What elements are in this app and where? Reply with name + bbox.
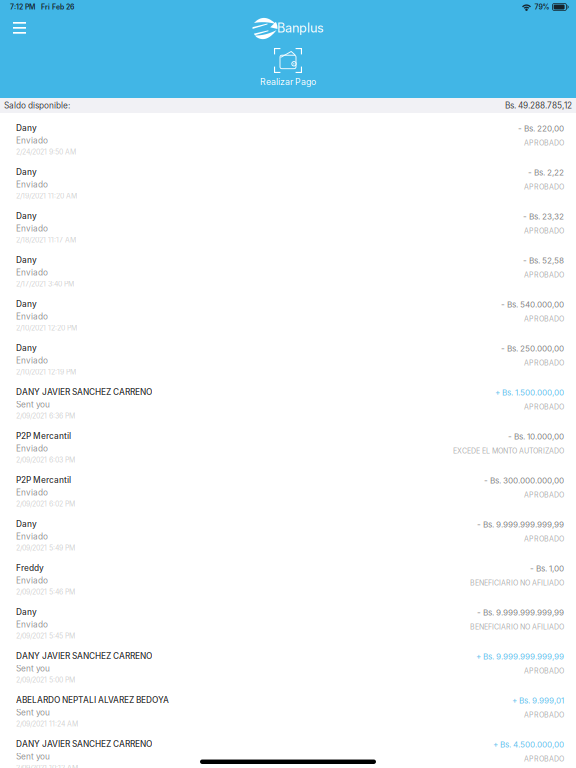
staticText: Dany (16, 343, 37, 353)
staticText: Banplus (277, 20, 324, 36)
staticText: 79% (534, 3, 549, 11)
staticText: APROBADO (524, 491, 564, 499)
staticText: Enviado (16, 487, 48, 497)
staticText: APROBADO (524, 755, 564, 763)
staticText: 2/10/2021 12:19 PM (16, 368, 76, 376)
staticText: - Bs. 2,22 (528, 168, 564, 177)
button[interactable]: ABELARDO NEPTALI ALVAREZ BEDOYA (0, 685, 576, 729)
staticText: - Bs. 540.000,00 (501, 300, 564, 309)
staticText: 2/09/2021 5:00 PM (16, 676, 75, 684)
staticText: Dany (16, 211, 37, 221)
staticText: + Bs. 4.500.000,00 (493, 740, 564, 749)
staticText: 2/17/2021 3:40 PM (16, 280, 74, 288)
button[interactable]: Dany (0, 157, 576, 201)
staticText: BENEFICIARIO NO AFILIADO (470, 579, 564, 587)
staticText: 2/18/2021 11:17 AM (16, 236, 76, 244)
button[interactable]: Dany (0, 333, 576, 377)
staticText: Sent you (16, 707, 50, 717)
staticText: - Bs. 220,00 (518, 124, 564, 133)
staticText: - Bs. 52,58 (523, 256, 564, 265)
staticText: - Bs. 300.000.000,00 (484, 476, 564, 485)
button[interactable]: Freddy (0, 553, 576, 597)
staticText: APROBADO (524, 403, 564, 411)
staticText: 2/09/2021 10:12 AM (16, 764, 78, 768)
staticText: Dany (16, 519, 37, 529)
staticText: Saldo disponible: (4, 100, 70, 110)
staticText: - Bs. 250.000,00 (501, 344, 564, 353)
button[interactable]: Dany (0, 113, 576, 157)
button[interactable]: Dany (0, 201, 576, 245)
staticText: Enviado (16, 179, 48, 189)
staticText: DANY JAVIER SANCHEZ CARREÑO (16, 651, 152, 661)
staticText: Dany (16, 255, 37, 265)
staticText: Enviado (16, 135, 48, 145)
staticText: APROBADO (524, 139, 564, 147)
staticText: + Bs. 9.999,01 (512, 696, 564, 705)
staticText: Enviado (16, 355, 48, 365)
staticText: 2/10/2021 12:20 PM (16, 324, 77, 332)
button[interactable]: Dany (0, 289, 576, 333)
button[interactable]: Realizar Pago (260, 48, 316, 87)
staticText: P2P Mercantil (16, 431, 71, 441)
staticText: APROBADO (524, 667, 564, 675)
staticText: Fri Feb 26 (41, 3, 74, 11)
staticText: 2/09/2021 5:49 PM (16, 544, 75, 552)
staticText: APROBADO (524, 271, 564, 279)
staticText: Bs. 49.288.785,12 (505, 100, 572, 110)
staticText: APROBADO (524, 535, 564, 543)
staticText: - Bs. 9.999.999.999,99 (477, 520, 564, 529)
staticText: P2P Mercantil (16, 475, 71, 485)
button[interactable]: DANY JAVIER SANCHEZ CARREÑO (0, 377, 576, 421)
staticText: Dany (16, 123, 37, 133)
button[interactable]: Dany (0, 597, 576, 641)
staticText: Sent you (16, 399, 50, 409)
staticText: 2/09/2021 5:45 PM (16, 632, 75, 640)
staticText: APROBADO (524, 359, 564, 367)
staticText: Enviado (16, 267, 48, 277)
staticText: Realizar Pago (260, 76, 316, 87)
staticText: ABELARDO NEPTALI ALVAREZ BEDOYA (16, 695, 169, 705)
staticText: Enviado (16, 311, 48, 321)
button[interactable]: P2P Mercantil (0, 465, 576, 509)
staticText: Dany (16, 607, 37, 617)
staticText: 2/09/2021 6:36 PM (16, 412, 75, 420)
staticText: 2/09/2021 5:46 PM (16, 588, 75, 596)
staticText: + Bs. 1.500.000,00 (495, 388, 564, 397)
staticText: APROBADO (524, 711, 564, 719)
staticText: Dany (16, 167, 37, 177)
staticText: APROBADO (524, 227, 564, 235)
staticText: - Bs. 10.000,00 (508, 432, 564, 441)
button[interactable]: DANY JAVIER SANCHEZ CARREÑO (0, 729, 576, 768)
staticText: 2/24/2021 9:50 AM (16, 148, 76, 156)
staticText: BENEFICIARIO NO AFILIADO (470, 623, 564, 631)
button[interactable]: P2P Mercantil (0, 421, 576, 465)
staticText: Enviado (16, 531, 48, 541)
staticText: 2/19/2021 11:20 AM (16, 192, 77, 200)
staticText: Freddy (16, 563, 44, 573)
button[interactable]: Dany (0, 245, 576, 289)
staticText: - Bs. 23,32 (523, 212, 564, 221)
staticText: 2/09/2021 6:03 PM (16, 456, 75, 464)
staticText: Sent you (16, 751, 50, 761)
button[interactable]: Dany (0, 509, 576, 553)
staticText: Enviado (16, 575, 48, 585)
staticText: Enviado (16, 443, 48, 453)
button[interactable]: DANY JAVIER SANCHEZ CARREÑO (0, 641, 576, 685)
staticText: - Bs. 1,00 (530, 564, 564, 573)
staticText: DANY JAVIER SANCHEZ CARREÑO (16, 739, 152, 749)
staticText: - Bs. 9.999.999.999,99 (477, 608, 564, 617)
staticText: 2/09/2021 6:02 PM (16, 500, 75, 508)
staticText: + Bs. 9.999.999.999,99 (476, 652, 564, 661)
button[interactable]: Menu (7, 16, 32, 40)
staticText: EXCEDE EL MONTO AUTORIZADO (453, 447, 564, 455)
staticText: APROBADO (524, 183, 564, 191)
staticText: Enviado (16, 619, 48, 629)
staticText: 2/09/2021 11:24 AM (16, 720, 78, 728)
staticText: Enviado (16, 223, 48, 233)
staticText: 7:12 PM (10, 3, 35, 11)
staticText: Dany (16, 299, 37, 309)
staticText: Sent you (16, 663, 50, 673)
staticText: APROBADO (524, 315, 564, 323)
staticText: DANY JAVIER SANCHEZ CARREÑO (16, 387, 152, 397)
